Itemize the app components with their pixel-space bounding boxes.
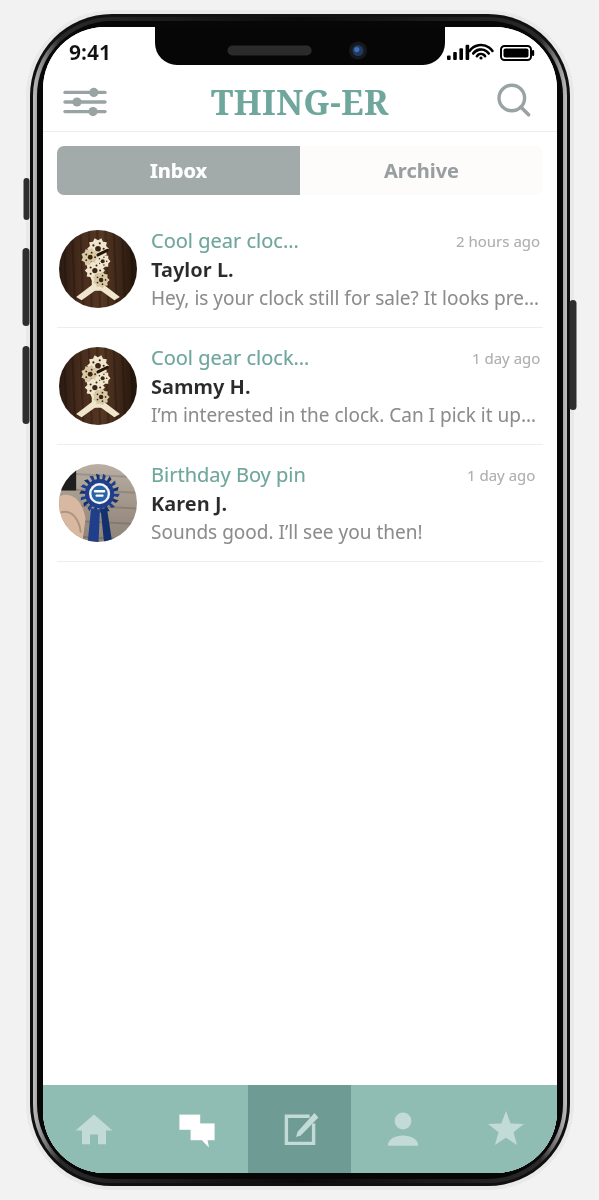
- staticText: Sounds good. I’ll see you then!: [151, 519, 423, 545]
- staticText: 1 day ago: [472, 348, 541, 368]
- button[interactable]: Favorites: [454, 1085, 557, 1173]
- button[interactable]: Birthday Boy pin: [43, 445, 557, 561]
- staticText: Cool gear clock - works!: [151, 344, 311, 371]
- button[interactable]: Profile: [351, 1085, 454, 1173]
- button[interactable]: Cool gear clock - works!: [43, 328, 557, 444]
- staticText: 1 day ago: [467, 465, 536, 485]
- staticText: Birthday Boy pin: [151, 461, 306, 488]
- staticText: Sammy H.: [151, 373, 251, 400]
- button[interactable]: Compose: [248, 1085, 351, 1173]
- button[interactable]: Cool gear clock - works!: [43, 211, 557, 327]
- button[interactable]: Home: [43, 1085, 145, 1173]
- staticText: THING-ER: [211, 79, 389, 125]
- staticText: Inbox: [150, 157, 208, 184]
- staticText: Taylor L.: [151, 256, 234, 283]
- staticText: Cool gear clock - works!: [151, 227, 303, 254]
- staticText: Hey, is your clock still for sale? It lo…: [151, 285, 541, 311]
- staticText: 9:41: [69, 38, 111, 67]
- button[interactable]: Filter: [57, 74, 113, 130]
- button[interactable]: Inbox: [57, 146, 300, 195]
- button[interactable]: Archive: [300, 146, 543, 195]
- staticText: I’m interested in the clock. Can I pick …: [151, 402, 536, 428]
- staticText: Archive: [384, 157, 460, 184]
- button[interactable]: Messages: [145, 1085, 248, 1173]
- staticText: 2 hours ago: [456, 231, 541, 251]
- button[interactable]: Search: [487, 74, 543, 130]
- staticText: Karen J.: [151, 490, 228, 517]
